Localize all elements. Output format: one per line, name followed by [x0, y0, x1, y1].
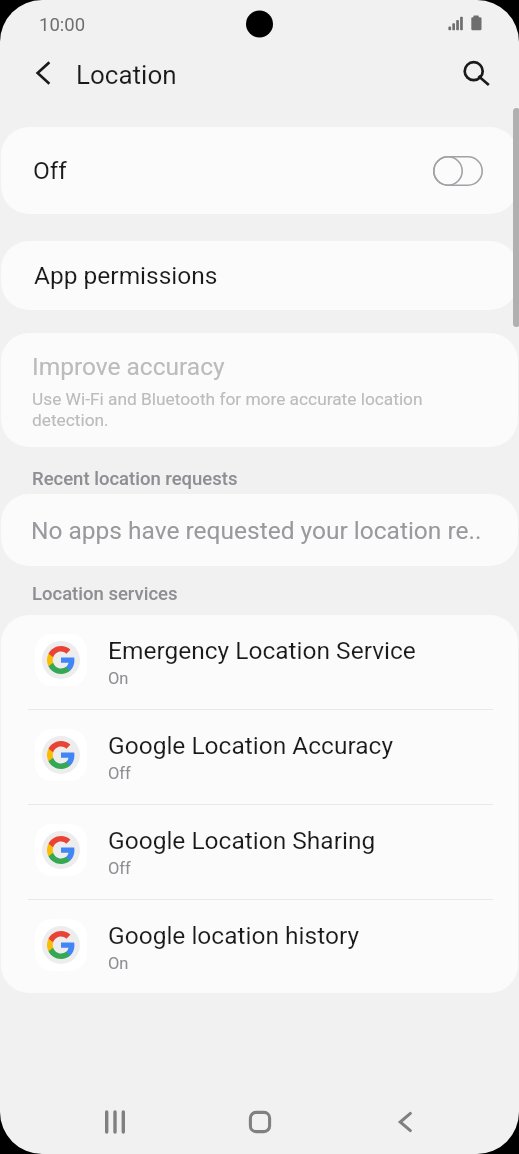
staticText: Google Location Accuracy — [108, 731, 393, 760]
staticText: Off — [108, 764, 131, 783]
button[interactable]: Home — [230, 1092, 290, 1152]
button[interactable]: Navigate up — [19, 49, 66, 96]
button[interactable]: Search — [452, 48, 500, 96]
button[interactable]: Recent apps — [85, 1092, 145, 1152]
button[interactable]: Off — [1, 127, 518, 214]
button[interactable]: App permissions — [1, 241, 518, 310]
staticText: Improve accuracy — [32, 352, 225, 381]
button[interactable]: Improve accuracy — [1, 333, 518, 447]
staticText: On — [108, 669, 129, 688]
staticText: Google Location Sharing — [108, 826, 376, 855]
button[interactable]: Google Location Accuracy — [1, 710, 518, 804]
staticText: Location services — [32, 583, 178, 605]
staticText: Google location history — [108, 921, 360, 950]
staticText: Emergency Location Service — [108, 636, 416, 665]
staticText: Off — [33, 156, 67, 185]
staticText: Use Wi-Fi and Bluetooth for more accurat… — [32, 389, 460, 430]
button[interactable]: Google location history — [1, 900, 518, 993]
button[interactable]: Back — [375, 1092, 435, 1152]
button[interactable]: Google Location Sharing — [1, 805, 518, 899]
staticText: No apps have requested your location re.… — [31, 516, 482, 545]
staticText: 10:00 — [39, 14, 86, 36]
staticText: App permissions — [34, 261, 218, 290]
staticText: On — [108, 954, 129, 973]
button[interactable]: Emergency Location Service — [1, 615, 518, 709]
staticText: Location — [76, 60, 177, 90]
staticText: Off — [108, 859, 131, 878]
staticText: Recent location requests — [32, 468, 238, 490]
